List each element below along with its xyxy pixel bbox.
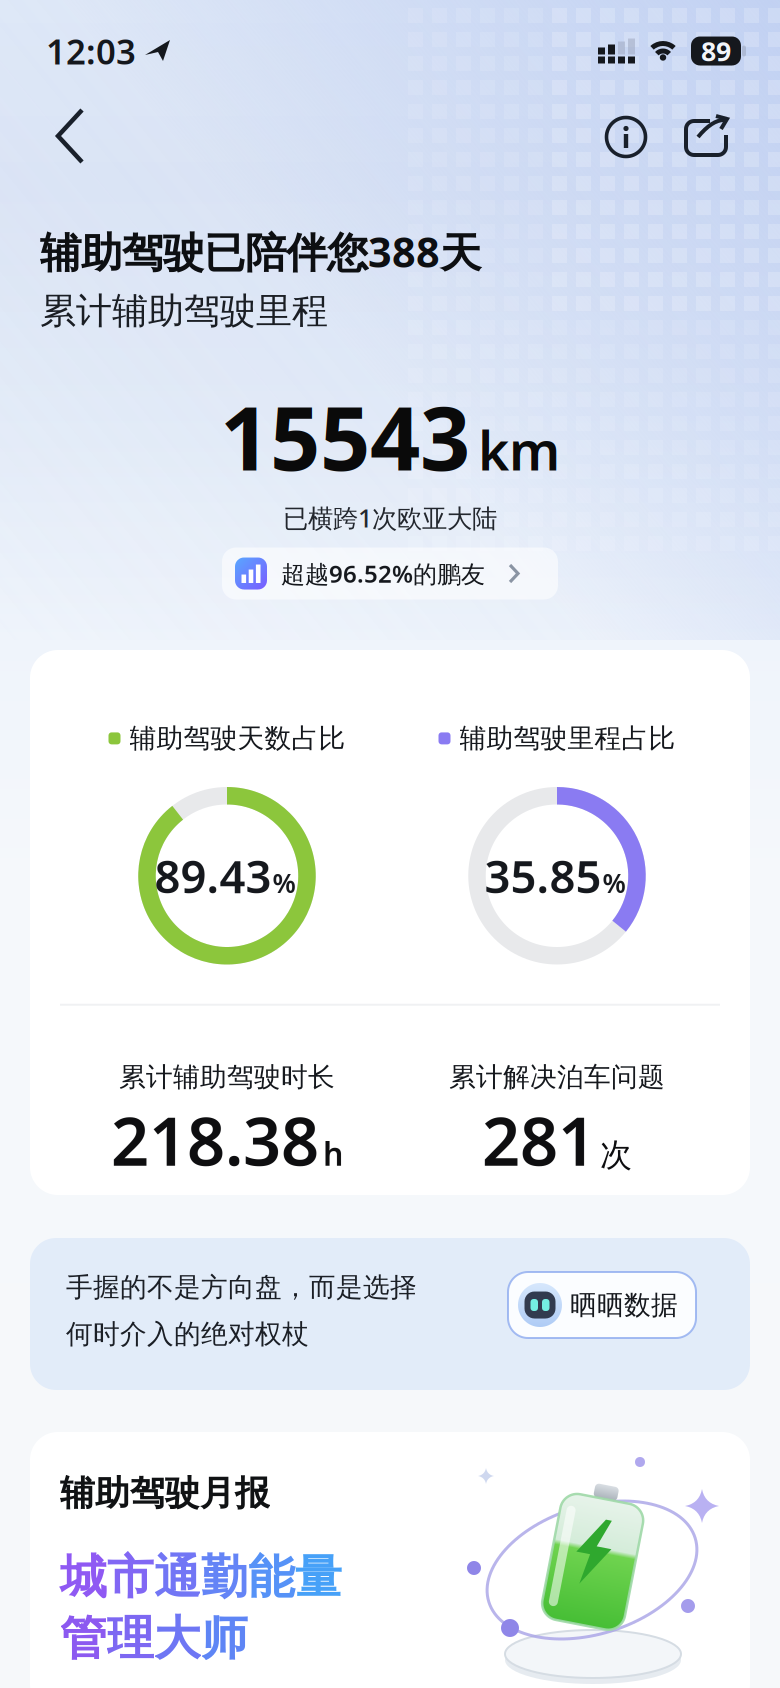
staticText: 281 bbox=[482, 1095, 596, 1184]
staticText: 218.38 bbox=[111, 1095, 319, 1184]
staticText: 理 bbox=[107, 1610, 154, 1667]
staticText: h bbox=[323, 1132, 343, 1174]
staticText: km bbox=[478, 414, 560, 485]
staticText: 手握的不是方向盘，而是选择 bbox=[66, 1271, 417, 1304]
staticText: 累计辅助驾驶里程 bbox=[40, 289, 328, 333]
staticText: 师 bbox=[201, 1610, 248, 1667]
staticText: 大 bbox=[154, 1610, 201, 1667]
staticText: 量 bbox=[295, 1549, 342, 1606]
button[interactable]: 晒晒数据 bbox=[508, 1272, 696, 1338]
staticText: 辅助驾驶已陪伴您388天 bbox=[40, 224, 481, 279]
staticText: 晒晒数据 bbox=[570, 1289, 678, 1321]
button[interactable]: 超越96.52%的鹏友 bbox=[222, 547, 558, 599]
staticText: 管 bbox=[60, 1610, 107, 1667]
staticText: 能 bbox=[248, 1549, 295, 1606]
staticText: % bbox=[602, 865, 625, 900]
staticText: 辅助驾驶天数占比 bbox=[129, 722, 345, 755]
staticText: 15543 bbox=[220, 378, 470, 495]
staticText: 次 bbox=[600, 1135, 632, 1175]
staticText: 市 bbox=[107, 1549, 154, 1606]
button[interactable]: Back bbox=[0, 110, 116, 164]
staticText: 勤 bbox=[201, 1549, 248, 1606]
staticText: 12:03 bbox=[46, 28, 136, 74]
button[interactable]: 辅助驾驶月报 bbox=[30, 1432, 750, 1688]
staticText: 何时介入的绝对权杖 bbox=[66, 1318, 309, 1351]
button[interactable]: Info bbox=[590, 115, 662, 159]
staticText: 超越96.52%的鹏友 bbox=[281, 558, 485, 589]
staticText: 辅助驾驶里程占比 bbox=[459, 722, 675, 755]
staticText: 35.85 bbox=[484, 846, 601, 906]
staticText: 通 bbox=[154, 1549, 201, 1606]
staticText: 城 bbox=[60, 1549, 107, 1606]
staticText: % bbox=[272, 865, 295, 900]
staticText: 89 bbox=[701, 33, 731, 69]
staticText: 已横跨1次欧亚大陆 bbox=[283, 501, 497, 534]
staticText: 89.43 bbox=[154, 846, 271, 906]
staticText: 累计解决泊车问题 bbox=[449, 1061, 665, 1094]
staticText: 辅助驾驶月报 bbox=[60, 1472, 270, 1515]
button[interactable]: Share bbox=[662, 115, 780, 159]
staticText: 累计辅助驾驶时长 bbox=[119, 1061, 335, 1094]
